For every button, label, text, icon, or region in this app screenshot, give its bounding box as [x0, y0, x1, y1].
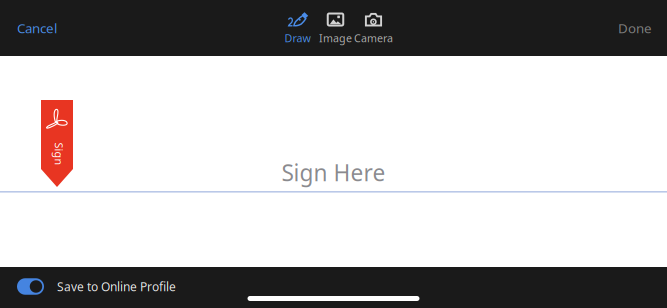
button[interactable]: Image — [317, 6, 354, 50]
staticText: Save to Online Profile — [57, 278, 176, 294]
staticText: Image — [319, 31, 352, 45]
button[interactable]: Camera — [355, 6, 392, 50]
staticText: Camera — [354, 31, 393, 45]
staticText: Cancel — [17, 19, 57, 37]
button[interactable]: Cancel — [0, 3, 74, 53]
button[interactable]: Draw — [279, 6, 316, 50]
staticText: Draw — [284, 31, 310, 45]
button[interactable]: Save to Online Profile — [0, 271, 176, 302]
button[interactable]: Done — [601, 3, 667, 53]
staticText: Sign — [47, 147, 70, 161]
staticText: Done — [618, 19, 652, 37]
staticText: Sign Here — [281, 157, 385, 187]
